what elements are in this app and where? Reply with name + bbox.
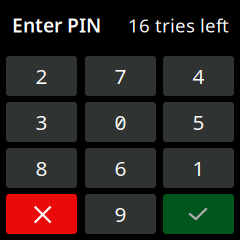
button[interactable]: Delete	[6, 194, 77, 234]
staticText: 5	[192, 108, 204, 136]
staticText: 0	[114, 108, 126, 136]
button[interactable]: Confirm	[163, 194, 234, 234]
staticText: 1	[192, 154, 204, 182]
staticText: 3	[35, 108, 47, 136]
button[interactable]: 1	[163, 148, 234, 188]
staticText: 8	[35, 154, 47, 182]
staticText: 16 tries left	[128, 12, 229, 38]
staticText: 9	[114, 200, 126, 228]
button[interactable]: 8	[6, 148, 77, 188]
button[interactable]: 2	[6, 56, 77, 96]
staticText: 6	[114, 154, 126, 182]
staticText: 4	[192, 62, 204, 90]
staticText: Enter PIN	[12, 12, 101, 38]
button[interactable]: 9	[85, 194, 156, 234]
staticText: 2	[35, 62, 47, 90]
button[interactable]: 4	[163, 56, 234, 96]
staticText: 7	[114, 62, 126, 90]
button[interactable]: 0	[85, 102, 156, 142]
button[interactable]: 7	[85, 56, 156, 96]
button[interactable]: 5	[163, 102, 234, 142]
button[interactable]: 3	[6, 102, 77, 142]
button[interactable]: 6	[85, 148, 156, 188]
